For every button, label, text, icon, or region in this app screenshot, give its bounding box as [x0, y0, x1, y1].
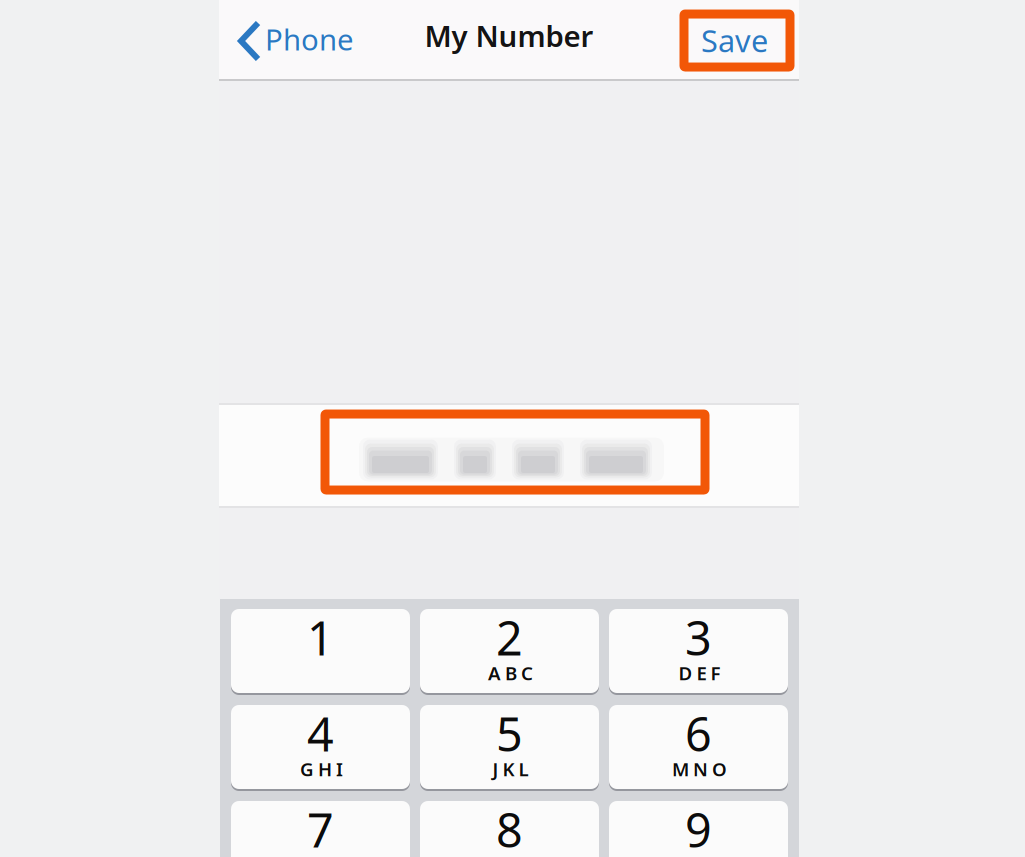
staticText: Save: [701, 20, 768, 61]
button[interactable]: 9: [609, 801, 788, 857]
button[interactable]: 3: [609, 609, 788, 693]
button[interactable]: Phone number: [219, 403, 799, 508]
staticText: Phone: [265, 19, 354, 58]
staticText: 3: [685, 606, 712, 668]
staticText: 1: [307, 606, 334, 668]
staticText: 5: [496, 702, 523, 764]
staticText: MNO: [672, 757, 727, 781]
button[interactable]: 7: [231, 801, 410, 857]
button[interactable]: Back to Phone: [231, 13, 366, 69]
staticText: My Number: [424, 16, 593, 55]
staticText: 7: [307, 798, 334, 857]
button[interactable]: 2: [420, 609, 599, 693]
staticText: 4: [307, 702, 334, 764]
button[interactable]: 4: [231, 705, 410, 789]
button[interactable]: Save: [689, 9, 780, 72]
staticText: ABC: [488, 661, 533, 685]
staticText: 6: [685, 702, 712, 764]
button[interactable]: 5: [420, 705, 599, 789]
staticText: DEF: [678, 661, 720, 685]
button[interactable]: 8: [420, 801, 599, 857]
staticText: JKL: [492, 757, 528, 781]
staticText: 9: [685, 798, 712, 857]
button[interactable]: 6: [609, 705, 788, 789]
staticText: 2: [496, 606, 523, 668]
staticText: GHI: [300, 757, 343, 781]
button[interactable]: 1: [231, 609, 410, 693]
staticText: 8: [496, 798, 523, 857]
